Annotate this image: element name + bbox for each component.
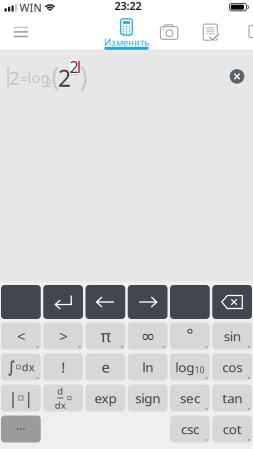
button[interactable]: [43, 285, 83, 319]
staticText: 2: [9, 65, 20, 90]
staticText: e: [101, 357, 109, 377]
button[interactable]: cos: [212, 353, 252, 380]
button[interactable]: π: [85, 322, 125, 349]
button[interactable]: [189, 14, 231, 48]
staticText: !: [61, 357, 65, 377]
button[interactable]: e: [85, 353, 125, 380]
staticText: sin: [224, 327, 241, 345]
staticText: 23:22: [114, 0, 141, 13]
button[interactable]: exp: [85, 384, 125, 411]
staticText: log: [175, 358, 194, 376]
button[interactable]: [170, 285, 210, 319]
button[interactable]: [1, 415, 41, 442]
button[interactable]: ∞: [128, 322, 168, 349]
staticText: (: [51, 59, 59, 94]
button[interactable]: log: [170, 353, 210, 380]
button[interactable]: csc: [170, 415, 210, 442]
staticText: ): [79, 59, 87, 94]
button[interactable]: [148, 14, 190, 48]
staticText: exp: [94, 389, 116, 407]
button[interactable]: ln: [128, 353, 168, 380]
staticText: <: [17, 326, 25, 346]
button[interactable]: tan: [212, 384, 252, 411]
staticText: ∫: [7, 358, 15, 376]
staticText: 10: [195, 365, 205, 375]
staticText: cos: [222, 358, 242, 376]
button[interactable]: ∫: [1, 353, 41, 380]
button[interactable]: [230, 69, 244, 84]
button[interactable]: cot: [212, 415, 252, 442]
staticText: 2: [58, 63, 71, 93]
staticText: =: [19, 68, 27, 88]
button[interactable]: Изменить: [104, 13, 148, 50]
button[interactable]: d: [43, 384, 83, 411]
button[interactable]: sec: [170, 384, 210, 411]
staticText: dx: [55, 399, 66, 411]
staticText: d: [57, 385, 63, 397]
staticText: sign: [135, 389, 160, 407]
button[interactable]: [212, 285, 252, 319]
staticText: tan: [222, 389, 242, 407]
staticText: |: [8, 387, 17, 409]
staticText: sec: [180, 389, 200, 407]
staticText: WIN: [19, 0, 41, 15]
button[interactable]: sin: [212, 322, 252, 349]
button[interactable]: [1, 285, 41, 319]
staticText: |: [24, 387, 33, 409]
staticText: >: [59, 326, 67, 346]
button[interactable]: [85, 285, 125, 319]
staticText: π: [100, 325, 110, 347]
staticText: csc: [181, 420, 199, 438]
button[interactable]: °: [170, 322, 210, 349]
staticText: 2: [46, 75, 52, 90]
staticText: dx: [22, 360, 35, 374]
button[interactable]: [4, 17, 38, 47]
staticText: log: [27, 68, 49, 87]
staticText: °: [186, 324, 193, 345]
button[interactable]: >: [43, 322, 83, 349]
button[interactable]: <: [1, 322, 41, 349]
button[interactable]: [128, 285, 168, 319]
button[interactable]: !: [43, 353, 83, 380]
button[interactable]: sign: [128, 384, 168, 411]
staticText: ln: [142, 358, 153, 376]
staticText: ∞: [141, 326, 155, 346]
staticText: 2: [69, 56, 78, 77]
button[interactable]: |: [1, 384, 41, 411]
staticText: Изменить: [104, 36, 149, 48]
staticText: cot: [223, 420, 242, 438]
